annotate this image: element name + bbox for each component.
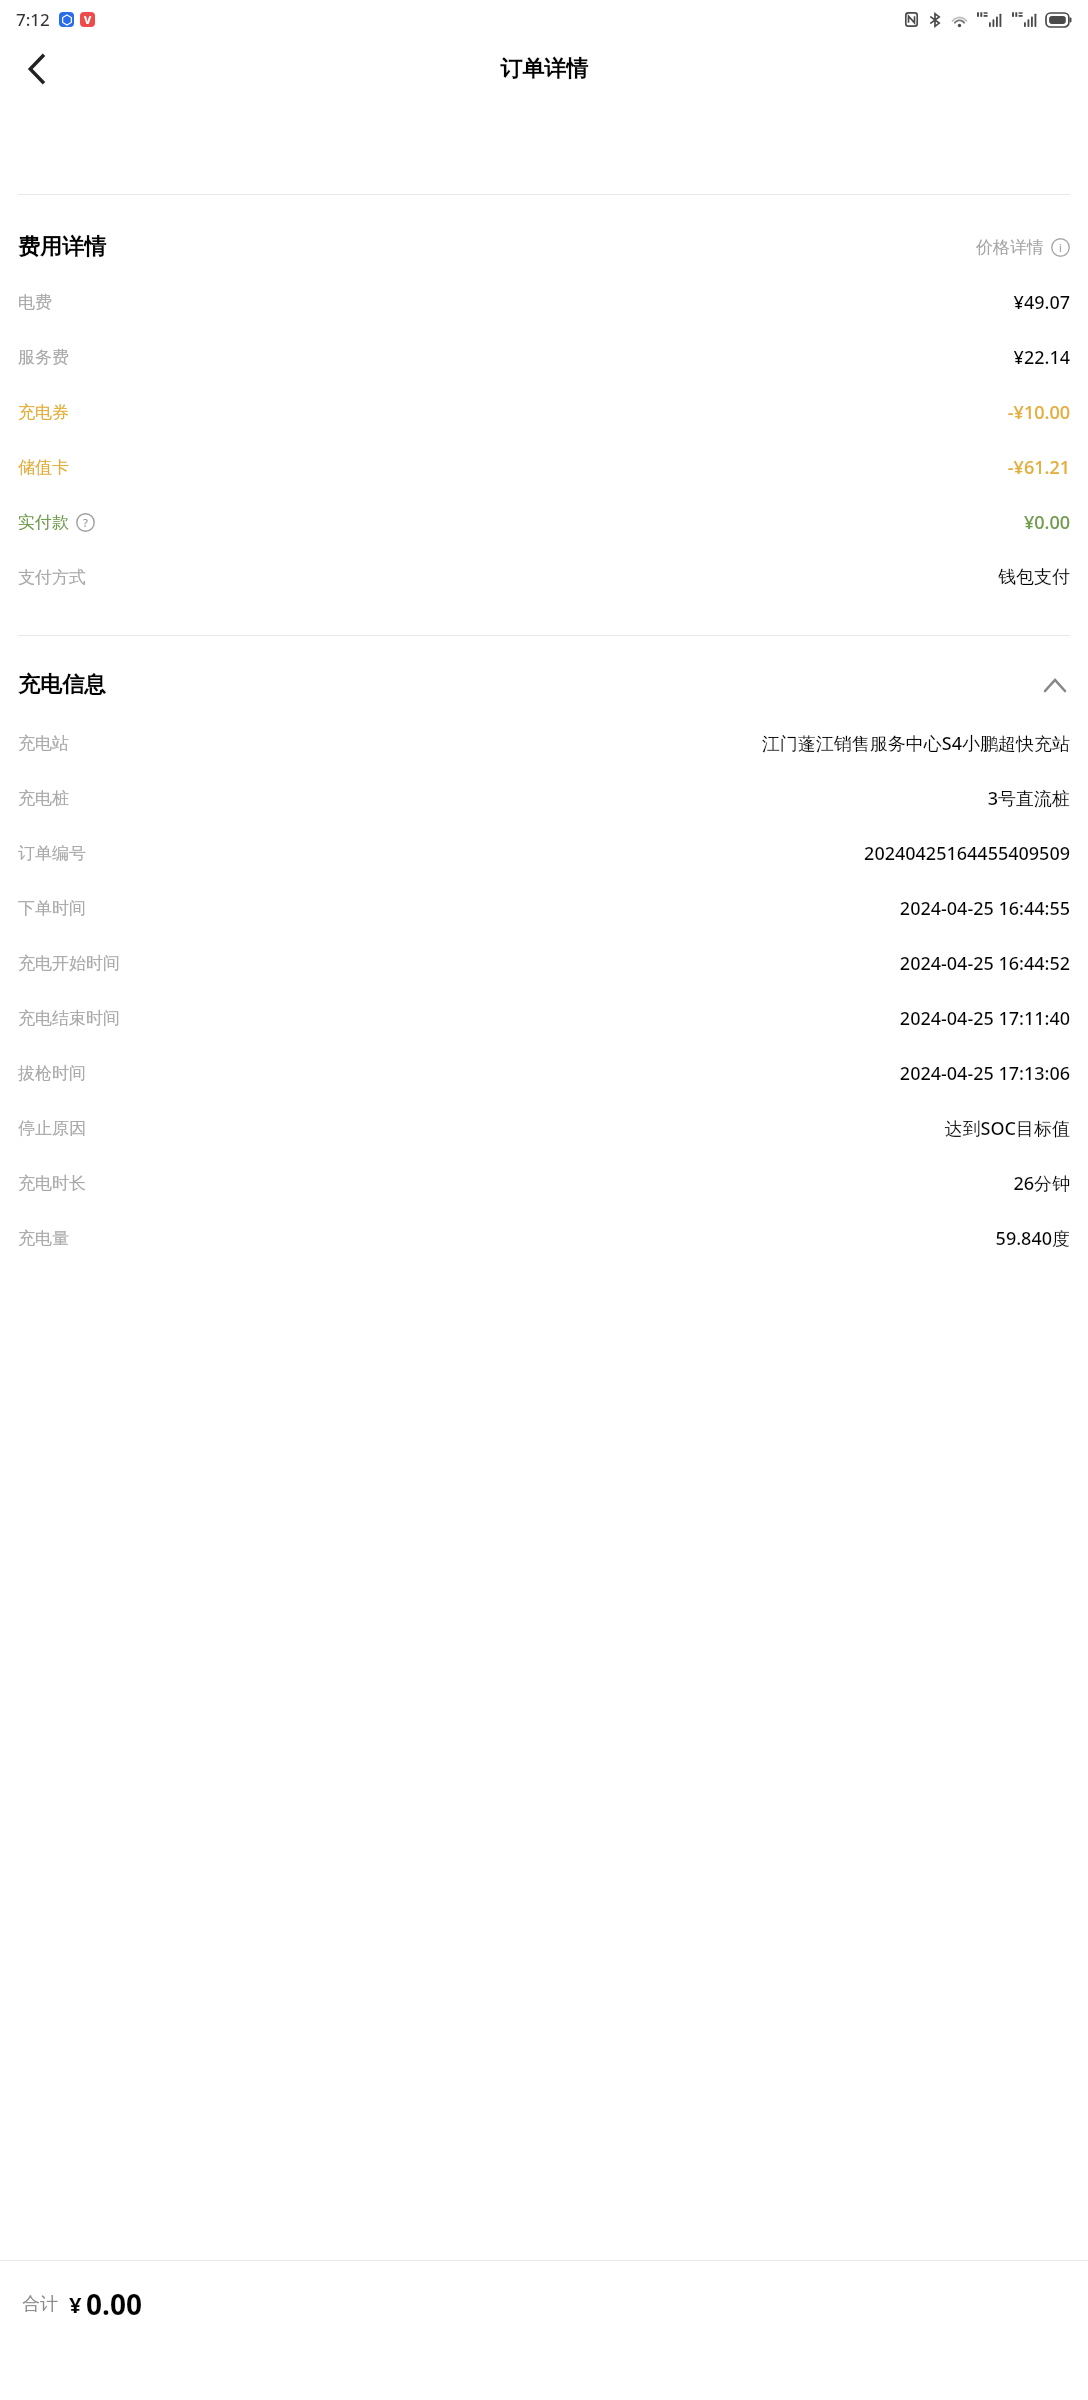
staticText: 2024-04-25 17:11:40 <box>899 1006 1070 1031</box>
button[interactable]: 充电券 <box>0 385 1088 440</box>
staticText: V <box>84 12 92 27</box>
staticText: 充电桩 <box>18 788 69 809</box>
button[interactable]: 充电站 <box>0 716 1088 771</box>
staticText: 7:12 <box>16 8 50 31</box>
staticText: 实付款 <box>18 512 69 533</box>
staticText: -¥61.21 <box>1007 455 1070 480</box>
staticText: ¥0.00 <box>1023 510 1070 535</box>
staticText: 2024-04-25 17:13:06 <box>899 1061 1070 1086</box>
button[interactable]: 订单编号 <box>0 826 1088 881</box>
other: Collapse <box>1040 670 1070 700</box>
staticText: 储值卡 <box>18 457 69 478</box>
staticText: -¥10.00 <box>1007 400 1070 425</box>
staticText: 拔枪时间 <box>18 1063 86 1084</box>
button[interactable]: 充电结束时间 <box>0 991 1088 1046</box>
button[interactable]: 充电量 <box>0 1211 1088 1266</box>
staticText: 充电时长 <box>18 1173 86 1194</box>
button[interactable]: 实付款 <box>0 495 1088 550</box>
staticText: 停止原因 <box>18 1118 86 1139</box>
button[interactable]: Back <box>10 43 62 95</box>
staticText: 59.840度 <box>995 1226 1070 1251</box>
button[interactable]: 停止原因 <box>0 1101 1088 1156</box>
staticText: ¥22.14 <box>1013 345 1070 370</box>
staticText: 钱包支付 <box>998 566 1070 589</box>
staticText: 合计 <box>22 2293 58 2316</box>
button[interactable]: 拔枪时间 <box>0 1046 1088 1101</box>
staticText: 2024-04-25 16:44:52 <box>899 951 1070 976</box>
staticText: 充电结束时间 <box>18 1008 120 1029</box>
staticText: 充电券 <box>18 402 69 423</box>
staticText: 订单详情 <box>500 55 588 83</box>
staticText: 订单编号 <box>18 843 86 864</box>
button[interactable]: 下单时间 <box>0 881 1088 936</box>
staticText: 充电站 <box>18 733 69 754</box>
staticText: 费用详情 <box>18 233 106 261</box>
staticText: i <box>1059 240 1062 255</box>
staticText: 20240425164455409509 <box>864 841 1070 866</box>
staticText: 价格详情 <box>976 237 1044 258</box>
button[interactable]: 充电桩 <box>0 771 1088 826</box>
staticText: 服务费 <box>18 347 69 368</box>
button[interactable]: 服务费 <box>0 330 1088 385</box>
button[interactable]: 支付方式 <box>0 550 1088 605</box>
button[interactable]: 充电开始时间 <box>0 936 1088 991</box>
staticText: 充电信息 <box>18 671 106 699</box>
staticText: 2024-04-25 16:44:55 <box>899 896 1070 921</box>
staticText: 0.00 <box>86 2285 142 2323</box>
staticText: 充电量 <box>18 1228 69 1249</box>
button[interactable]: 电费 <box>0 275 1088 330</box>
staticText: 江门蓬江销售服务中心S4小鹏超快充站 <box>761 731 1070 756</box>
staticText: ? <box>83 515 88 530</box>
staticText: 达到SOC目标值 <box>944 1116 1070 1141</box>
button[interactable]: 价格详情 <box>976 237 1070 258</box>
button[interactable]: 充电信息 <box>0 662 1088 708</box>
button[interactable]: 储值卡 <box>0 440 1088 495</box>
staticText: ¥49.07 <box>1013 290 1070 315</box>
button[interactable]: 充电时长 <box>0 1156 1088 1211</box>
staticText: 支付方式 <box>18 567 86 588</box>
staticText: 下单时间 <box>18 898 86 919</box>
staticText: 3号直流桩 <box>987 786 1070 811</box>
staticText: 充电开始时间 <box>18 953 120 974</box>
staticText: ¥ <box>69 2289 82 2319</box>
staticText: 26分钟 <box>1013 1171 1070 1196</box>
staticText: 电费 <box>18 292 52 313</box>
